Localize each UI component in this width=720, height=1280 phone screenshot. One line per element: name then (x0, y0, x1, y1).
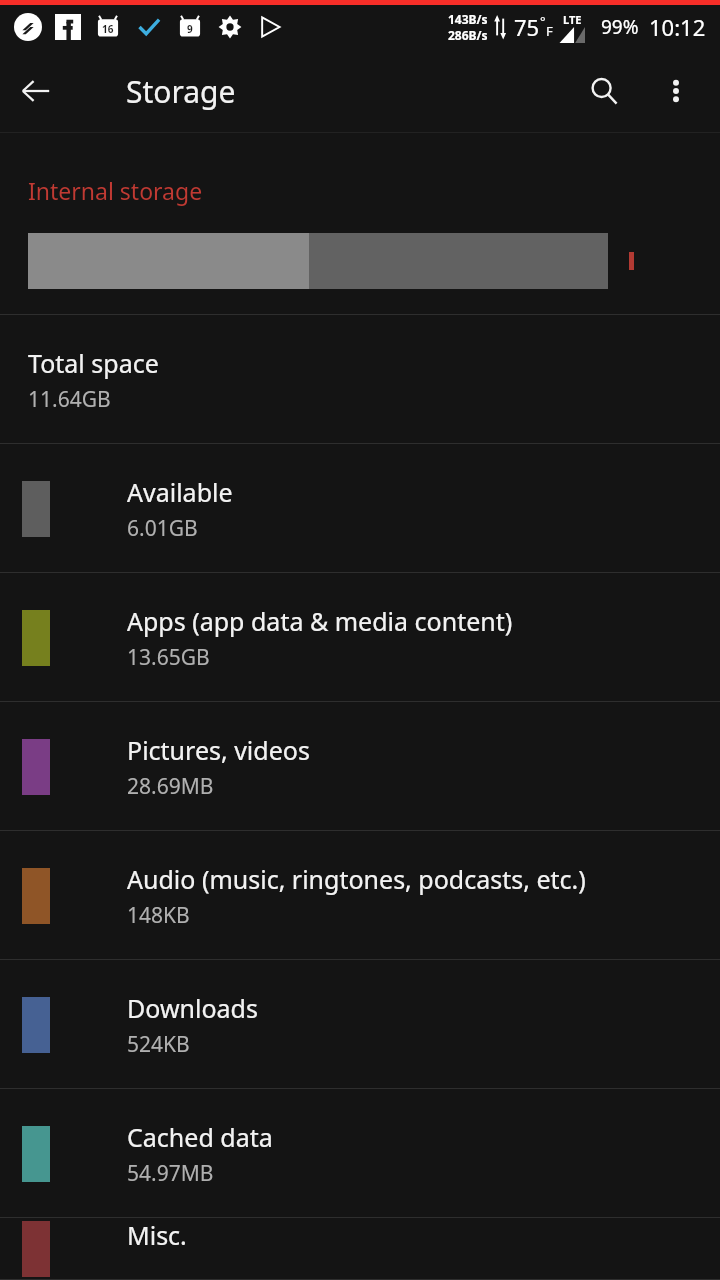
staticText: F (546, 22, 553, 40)
staticText: Total space (28, 346, 159, 380)
staticText: 6.01GB (127, 514, 198, 543)
staticText: 99% (601, 14, 639, 40)
staticText: Storage (126, 71, 236, 112)
staticText: Downloads (127, 991, 258, 1025)
button[interactable]: Search (568, 55, 640, 127)
staticText: 54.97MB (127, 1159, 214, 1188)
staticText: Available (127, 475, 233, 509)
staticText: 9 (187, 22, 193, 36)
staticText: Apps (app data & media content) (127, 604, 513, 638)
staticText: 75 (514, 12, 540, 42)
staticText: LTE (563, 12, 582, 27)
staticText: Audio (music, ringtones, podcasts, etc.) (127, 862, 586, 896)
staticText: 286B/s (448, 27, 488, 43)
staticText: 28.69MB (127, 772, 214, 801)
button[interactable]: Misc. (0, 1218, 720, 1280)
staticText: 13.65GB (127, 643, 210, 672)
button[interactable]: Apps (app data & media content) (0, 573, 720, 702)
staticText: Misc. (127, 1218, 187, 1252)
staticText: Internal storage (28, 175, 203, 206)
button[interactable]: Available (0, 444, 720, 573)
staticText: 16 (102, 22, 114, 36)
staticText: 143B/s (448, 11, 488, 27)
button[interactable]: Pictures, videos (0, 702, 720, 831)
staticText: 10:12 (649, 12, 706, 42)
staticText: 524KB (127, 1030, 190, 1059)
button[interactable]: Downloads (0, 960, 720, 1089)
button[interactable]: Back (0, 55, 72, 127)
button[interactable]: Audio (music, ringtones, podcasts, etc.) (0, 831, 720, 960)
staticText: ° (540, 12, 546, 30)
button[interactable]: More options (640, 55, 712, 127)
staticText: 11.64GB (28, 385, 111, 414)
staticText: 148KB (127, 901, 190, 930)
button[interactable]: Total space (0, 315, 720, 444)
staticText: Cached data (127, 1120, 273, 1154)
staticText: Pictures, videos (127, 733, 310, 767)
button[interactable]: Cached data (0, 1089, 720, 1218)
